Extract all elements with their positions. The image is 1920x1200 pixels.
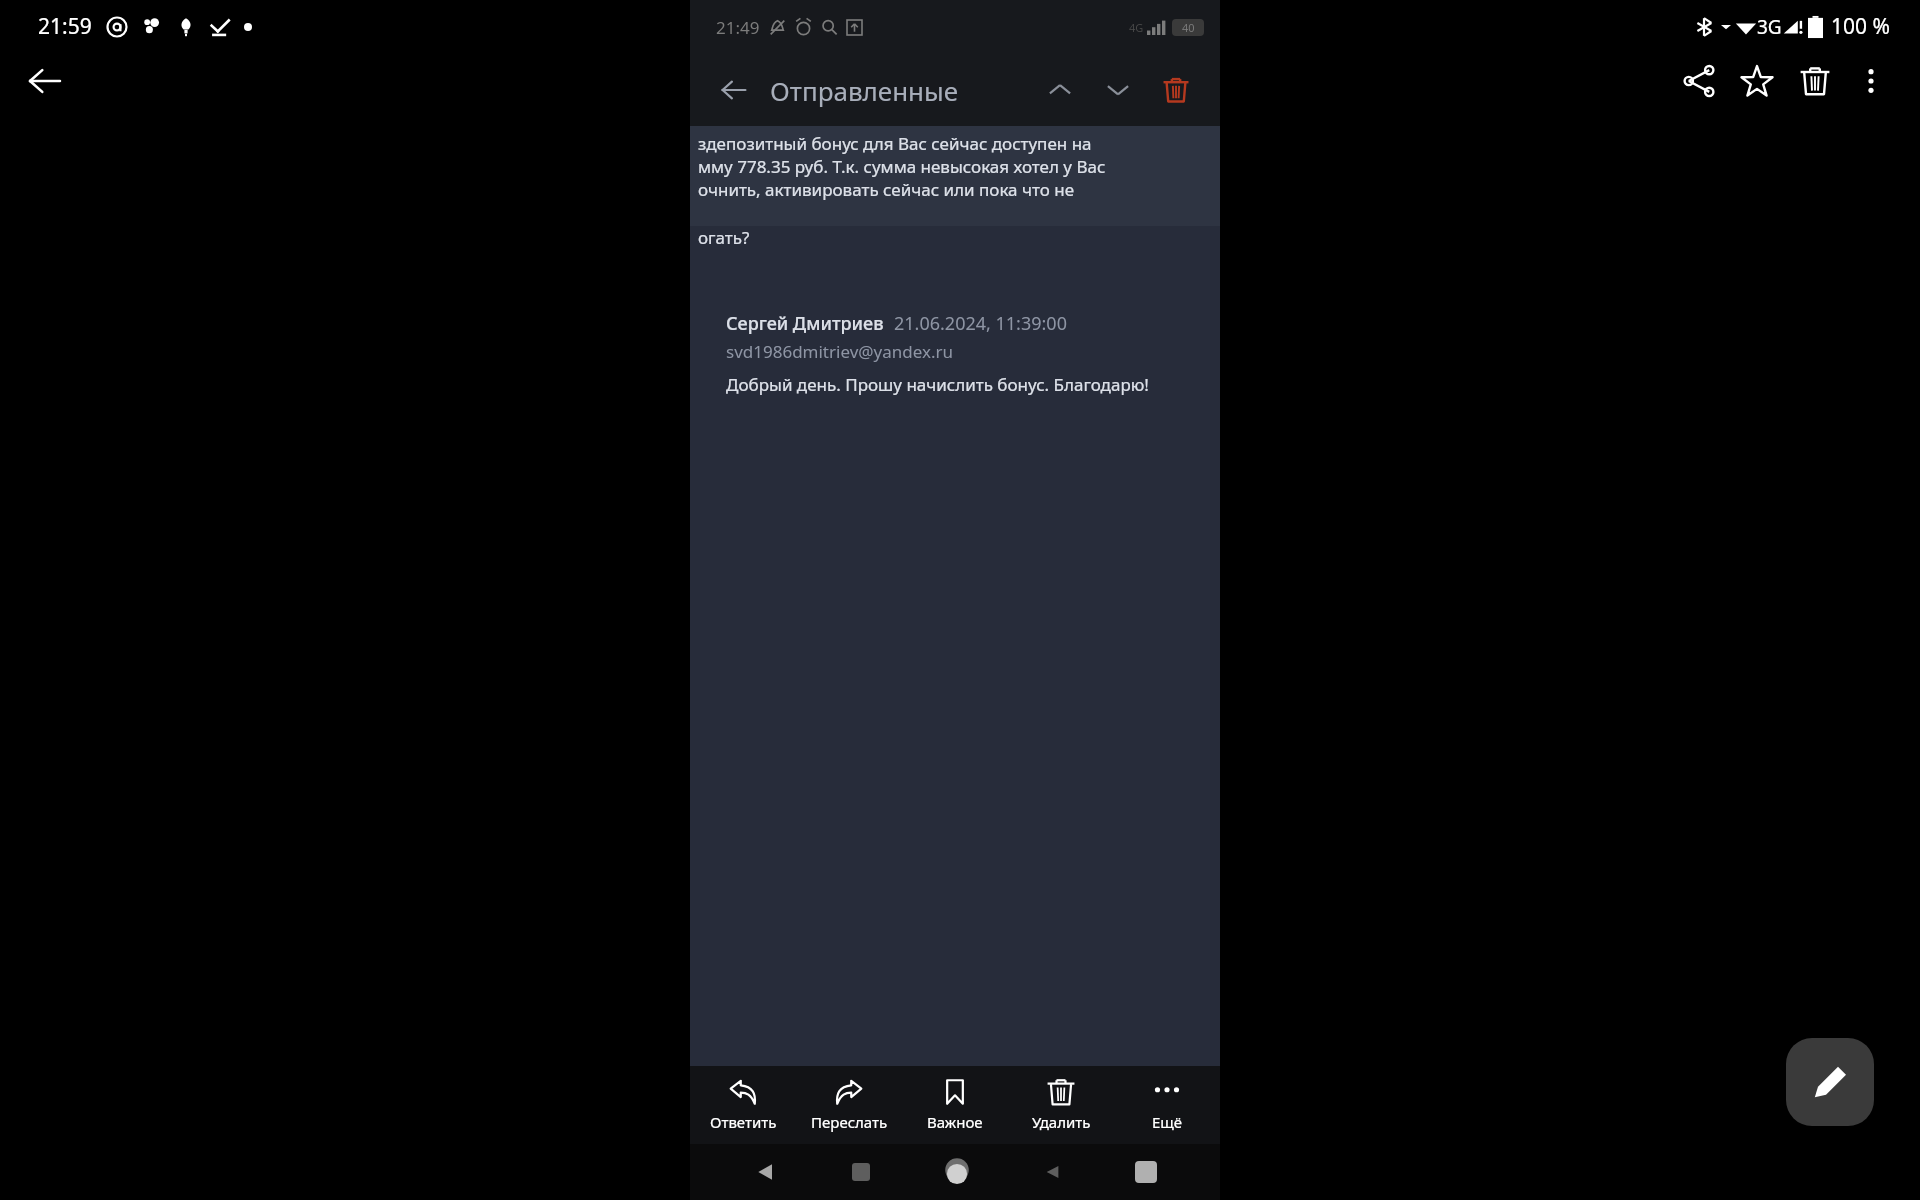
button[interactable]: Recents bbox=[841, 1152, 881, 1192]
staticText: огать? bbox=[698, 226, 750, 249]
button[interactable]: Back bbox=[744, 1150, 788, 1194]
staticText: 3G bbox=[1757, 14, 1782, 40]
button[interactable]: More options bbox=[1844, 54, 1898, 108]
button[interactable]: Back bbox=[1033, 1152, 1073, 1192]
button[interactable]: Delete bbox=[1154, 68, 1198, 112]
staticText: 4G bbox=[1129, 20, 1144, 35]
staticText: Важное bbox=[927, 1112, 983, 1132]
button[interactable]: Next bbox=[1096, 68, 1140, 112]
staticText: Добрый день. Прошу начислить бонус. Благ… bbox=[726, 373, 1149, 396]
staticText: 40 bbox=[1182, 20, 1195, 35]
staticText: Переслать bbox=[811, 1112, 888, 1132]
button[interactable]: Previous bbox=[1038, 68, 1082, 112]
button[interactable]: Share bbox=[1670, 52, 1728, 110]
button[interactable]: Сергей Дмитриев bbox=[690, 311, 1220, 1066]
button[interactable]: Важное bbox=[902, 1066, 1008, 1144]
staticText: очнить, активировать сейчас или пока что… bbox=[698, 178, 1075, 201]
button[interactable]: Favorite bbox=[1728, 52, 1786, 110]
button[interactable]: Ещё bbox=[1114, 1066, 1220, 1144]
staticText: Удалить bbox=[1032, 1112, 1091, 1132]
button[interactable]: Удалить bbox=[1008, 1066, 1114, 1144]
staticText: мму 778.35 руб. Т.к. сумма невысокая хот… bbox=[698, 155, 1106, 178]
button[interactable]: Ответить bbox=[690, 1066, 796, 1144]
staticText: 100 % bbox=[1831, 12, 1890, 41]
button[interactable]: Переслать bbox=[796, 1066, 902, 1144]
staticText: 21.06.2024, 11:39:00 bbox=[894, 311, 1067, 336]
button[interactable]: Delete bbox=[1786, 52, 1844, 110]
button[interactable]: Back bbox=[18, 54, 72, 108]
staticText: Отправленные bbox=[770, 73, 959, 108]
staticText: 21:49 bbox=[716, 16, 760, 39]
staticText: здепозитный бонус для Вас сейчас доступе… bbox=[698, 132, 1092, 155]
staticText: 21:59 bbox=[38, 12, 92, 41]
staticText: Ещё bbox=[1152, 1112, 1183, 1132]
staticText: Ответить bbox=[710, 1112, 777, 1132]
staticText: Сергей Дмитриев bbox=[726, 311, 884, 336]
button[interactable]: Overview bbox=[1126, 1152, 1166, 1192]
button[interactable]: Back bbox=[712, 68, 756, 112]
button[interactable]: Home bbox=[935, 1150, 979, 1194]
staticText: svd1986dmitriev@yandex.ru bbox=[726, 340, 954, 363]
button[interactable]: Compose bbox=[1786, 1038, 1874, 1126]
